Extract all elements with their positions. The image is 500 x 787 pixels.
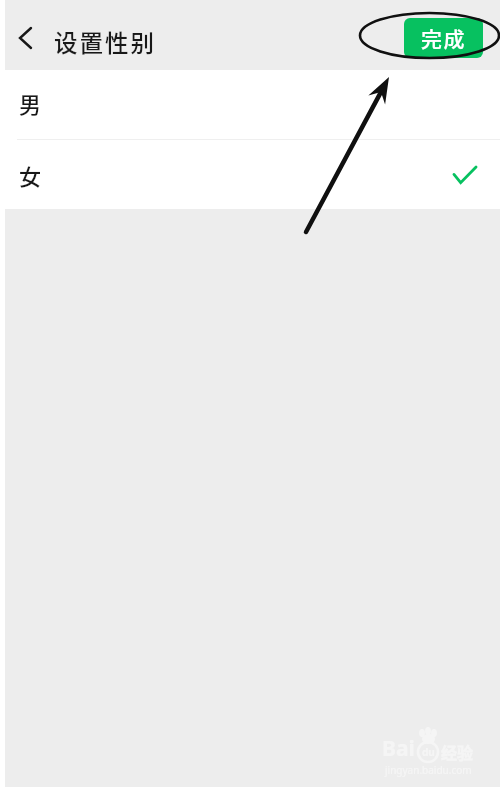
button[interactable] [13,26,37,50]
staticText: 男 [19,87,42,119]
staticText: du [422,745,435,759]
button[interactable]: 完成 [404,18,483,58]
staticText: 女 [19,159,42,191]
staticText: Bai [382,734,415,763]
staticText: 完成 [421,23,466,53]
staticText: 经验 [441,740,474,763]
button[interactable]: 男 [5,70,500,139]
button[interactable]: 女 [5,140,500,209]
staticText: 设置性别 [54,25,156,59]
